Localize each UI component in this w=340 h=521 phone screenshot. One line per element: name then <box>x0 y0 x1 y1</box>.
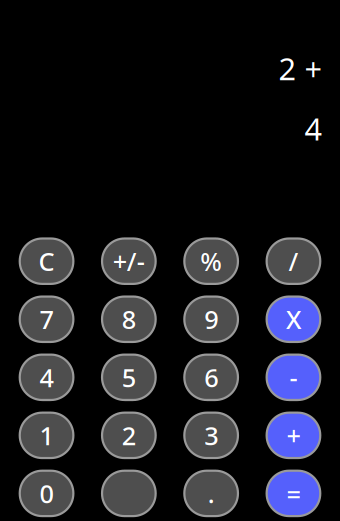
staticText: = <box>286 477 300 510</box>
button[interactable]: Plus <box>267 413 320 458</box>
button[interactable]: Blank <box>102 471 156 516</box>
button[interactable]: Minus <box>267 355 320 400</box>
button[interactable]: 7 <box>20 297 73 342</box>
button[interactable]: 8 <box>102 297 156 342</box>
staticText: 1 <box>39 418 53 452</box>
staticText: 7 <box>39 302 53 336</box>
button[interactable]: Equals <box>267 471 320 516</box>
staticText: 2 <box>122 418 136 452</box>
staticText: C <box>38 244 54 278</box>
button[interactable]: 5 <box>102 355 156 400</box>
button[interactable]: 3 <box>184 413 238 458</box>
staticText: - <box>289 360 297 394</box>
staticText: . <box>208 477 215 510</box>
button[interactable]: 9 <box>184 297 238 342</box>
button[interactable]: 4 <box>20 355 73 400</box>
staticText: 2 + <box>278 48 322 89</box>
button[interactable]: 6 <box>184 355 238 400</box>
staticText: +/- <box>113 244 145 278</box>
button[interactable]: Decimal point <box>184 471 238 516</box>
staticText: 8 <box>122 302 136 336</box>
button[interactable]: Divide <box>267 238 320 284</box>
staticText: 4 <box>39 360 53 394</box>
staticText: 4 <box>304 108 322 149</box>
staticText: 6 <box>204 360 218 394</box>
staticText: X <box>286 302 301 336</box>
staticText: + <box>286 418 300 452</box>
staticText: % <box>200 244 222 278</box>
button[interactable]: Percent <box>184 238 238 284</box>
button[interactable]: Clear <box>20 238 73 284</box>
staticText: 0 <box>39 477 53 510</box>
staticText: / <box>288 244 298 278</box>
button[interactable]: 2 <box>102 413 156 458</box>
button[interactable]: 1 <box>20 413 73 458</box>
button[interactable]: 0 <box>20 471 73 516</box>
staticText: 3 <box>204 418 218 452</box>
button[interactable]: Plus minus <box>102 238 156 284</box>
staticText: 5 <box>122 360 136 394</box>
button[interactable]: Multiply <box>267 297 320 342</box>
staticText: 9 <box>204 302 218 336</box>
